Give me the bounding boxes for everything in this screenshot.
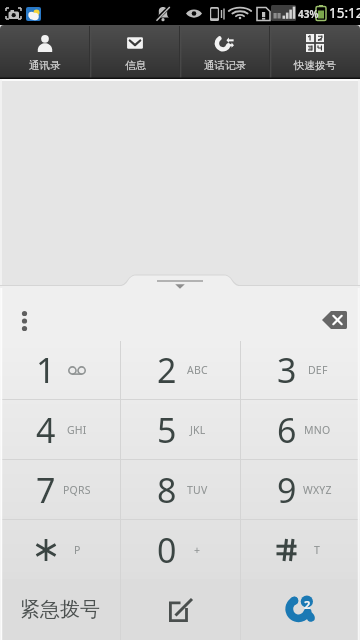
staticText: PQRS (63, 483, 91, 497)
staticText: 通话记录 (204, 59, 246, 72)
button[interactable]: 7 (0, 460, 120, 519)
staticText: 2 (157, 347, 177, 393)
button[interactable]: 9 (241, 460, 360, 519)
button[interactable]: 4 (0, 400, 120, 459)
button[interactable]: 通讯录 (0, 25, 90, 79)
staticText: 7 (36, 467, 56, 513)
staticText: 15:12 (329, 4, 360, 22)
staticText: 0 (157, 527, 177, 573)
button[interactable]: 0 (121, 520, 240, 579)
button[interactable]: 1 (0, 341, 120, 399)
staticText: 6 (277, 407, 297, 453)
button[interactable]: 5 (121, 400, 240, 459)
staticText: JKL (190, 423, 206, 437)
staticText: 4 (36, 407, 56, 453)
button[interactable]: T (241, 520, 360, 579)
staticText: 2 (304, 597, 311, 609)
button[interactable]: 通话记录 (180, 25, 270, 79)
staticText: 信息 (125, 59, 146, 72)
staticText: WXYZ (303, 483, 332, 497)
staticText: 8 (157, 467, 177, 513)
staticText: 快速拨号 (294, 59, 336, 72)
staticText: GHI (67, 423, 87, 437)
staticText: 1 (36, 347, 56, 393)
button[interactable]: Backspace (322, 311, 347, 329)
staticText: 5 (157, 407, 177, 453)
staticText: TUV (187, 483, 208, 497)
button[interactable]: 6 (241, 400, 360, 459)
button[interactable]: 快速拨号 (270, 25, 360, 79)
staticText: ABC (187, 363, 208, 377)
button[interactable]: New contact (121, 579, 240, 640)
button[interactable]: 紧急拨号 (0, 579, 120, 640)
button[interactable]: 3 (241, 341, 360, 399)
button[interactable]: More options (14, 308, 35, 334)
staticText: 3 (277, 347, 297, 393)
staticText: 通讯录 (29, 59, 61, 72)
staticText: DEF (308, 363, 328, 377)
staticText: MNO (304, 423, 331, 437)
staticText: T (314, 543, 321, 557)
button[interactable]: 2 (121, 341, 240, 399)
staticText: P (74, 543, 81, 557)
staticText: 紧急拨号 (20, 597, 100, 622)
button[interactable]: 8 (121, 460, 240, 519)
button[interactable]: 信息 (90, 25, 180, 79)
button[interactable]: P (0, 520, 120, 579)
button[interactable]: Call (241, 579, 360, 640)
staticText: + (194, 543, 201, 557)
staticText: 9 (277, 467, 297, 513)
staticText: 43% (298, 7, 319, 21)
